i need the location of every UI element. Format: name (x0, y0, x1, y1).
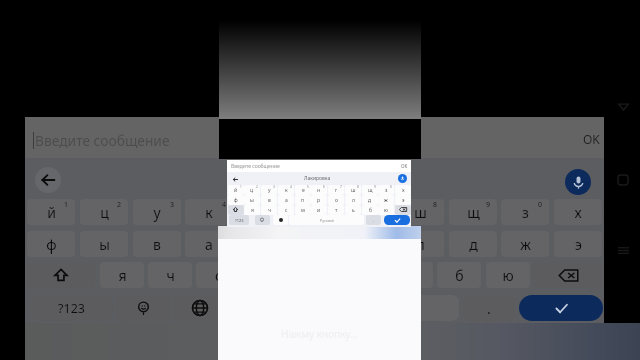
staticText: з (385, 187, 388, 194)
staticText: ш (414, 203, 427, 222)
staticText: 3 (273, 185, 275, 189)
staticText: а (285, 197, 288, 204)
button[interactable]: ц (80, 199, 128, 225)
button[interactable]: Voice input (565, 169, 591, 195)
staticText: Введите сообщение (35, 131, 170, 150)
button[interactable]: Back (612, 95, 634, 117)
button[interactable] (230, 295, 459, 321)
button[interactable]: ?123 (30, 295, 113, 321)
button[interactable]: й (27, 199, 75, 225)
button[interactable]: в (133, 231, 181, 257)
button[interactable]: п (238, 231, 286, 257)
staticText: в (153, 235, 161, 254)
staticText: 7 (380, 200, 385, 210)
staticText: щ (368, 187, 373, 194)
staticText: 5 (307, 185, 309, 189)
button[interactable]: Backspace (534, 262, 602, 288)
button[interactable]: ж (501, 231, 549, 257)
staticText: 9 (486, 200, 491, 210)
button[interactable]: я (100, 262, 144, 288)
staticText: у (268, 187, 271, 194)
button[interactable]: з (501, 199, 549, 225)
staticText: о (335, 197, 338, 204)
staticText: 4 (290, 185, 292, 189)
button[interactable]: Back (35, 167, 61, 193)
staticText: 6 (323, 185, 325, 189)
staticText: т (335, 207, 338, 214)
staticText: ц (100, 203, 109, 222)
staticText: ь (352, 207, 355, 214)
button[interactable]: Shift (27, 262, 95, 288)
staticText: 3 (170, 200, 175, 210)
staticText: и (317, 207, 321, 214)
staticText: н (311, 203, 320, 222)
other: Emoji (260, 218, 264, 222)
staticText: л (352, 197, 355, 204)
staticText: п (301, 197, 305, 204)
button[interactable]: д (449, 231, 497, 257)
button[interactable]: б (437, 262, 481, 288)
staticText: ф (234, 197, 238, 204)
button[interactable]: х (554, 199, 602, 225)
button[interactable]: е (238, 199, 286, 225)
staticText: . (373, 218, 375, 223)
staticText: 9 (374, 185, 376, 189)
button[interactable]: ш (396, 199, 444, 225)
button[interactable]: р (291, 231, 339, 257)
button[interactable]: ч (148, 262, 192, 288)
other: Voice input (398, 174, 407, 183)
button[interactable]: л (396, 231, 444, 257)
staticText: й (47, 203, 56, 222)
button[interactable]: Home (612, 169, 634, 191)
staticText: в (268, 197, 271, 204)
button[interactable]: щ (449, 199, 497, 225)
staticText: а (205, 235, 213, 254)
staticText: 2 (117, 200, 122, 210)
staticText: 8 (357, 185, 359, 189)
button[interactable]: ю (486, 262, 530, 288)
staticText: х (574, 203, 582, 222)
staticText: е (258, 203, 266, 222)
staticText: к (285, 187, 288, 194)
staticText: з (522, 203, 529, 222)
button[interactable]: к (185, 199, 233, 225)
staticText: у (153, 203, 161, 222)
staticText: г (335, 187, 338, 194)
button[interactable]: Change language (173, 295, 227, 321)
staticText: 5 (275, 200, 280, 210)
staticText: л (416, 235, 425, 254)
button[interactable]: Enter (519, 295, 603, 321)
button[interactable]: э (554, 231, 602, 257)
button[interactable]: а (185, 231, 233, 257)
staticText: п (258, 235, 267, 254)
button[interactable]: Recents (612, 239, 634, 261)
button[interactable]: о (343, 231, 391, 257)
button[interactable]: у (133, 199, 181, 225)
staticText: 0 (390, 185, 392, 189)
button[interactable]: н (291, 199, 339, 225)
button[interactable]: г (343, 199, 391, 225)
staticText: б (369, 207, 372, 214)
button[interactable]: ь (389, 262, 433, 288)
button[interactable]: Emoji (116, 295, 170, 321)
button[interactable]: ф (27, 231, 75, 257)
staticText: м (301, 207, 305, 214)
button[interactable]: Введите сообщение (25, 117, 604, 158)
staticText: Лакировка (304, 175, 331, 182)
staticText: ф (46, 235, 57, 254)
staticText: е (302, 187, 305, 194)
other: Change language (279, 218, 283, 222)
staticText: о (363, 235, 372, 254)
staticText: 1 (64, 200, 69, 210)
button[interactable]: ы (80, 231, 128, 257)
staticText: ю (502, 266, 514, 285)
button[interactable]: с (196, 262, 240, 288)
